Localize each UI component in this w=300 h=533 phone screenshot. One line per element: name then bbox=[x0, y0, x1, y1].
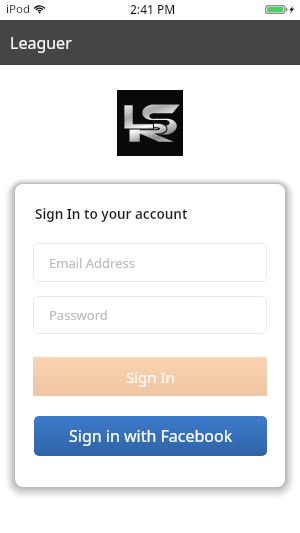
button[interactable]: Leaguer bbox=[0, 20, 300, 65]
staticText: 2:41 PM bbox=[130, 1, 176, 17]
other: Wi-Fi connected bbox=[34, 4, 45, 13]
staticText: Leaguer bbox=[10, 32, 72, 54]
button[interactable]: Email Address bbox=[33, 243, 267, 282]
staticText: Sign In to your account bbox=[35, 205, 188, 223]
staticText: Password bbox=[49, 306, 108, 324]
staticText: Sign In bbox=[126, 367, 175, 387]
button[interactable]: Password bbox=[33, 296, 267, 334]
other: LSR logo bbox=[117, 90, 183, 156]
button[interactable]: Sign in with Facebook bbox=[34, 416, 267, 456]
staticText: Sign in with Facebook bbox=[69, 425, 233, 447]
staticText: iPod bbox=[6, 1, 30, 17]
button[interactable]: Sign In bbox=[33, 357, 267, 396]
other: Battery charging bbox=[265, 5, 295, 14]
staticText: Email Address bbox=[49, 254, 135, 272]
